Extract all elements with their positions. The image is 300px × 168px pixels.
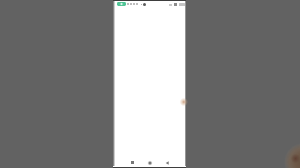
button[interactable]: Content	[113, 7, 186, 156]
button[interactable]: Home	[147, 160, 153, 166]
button[interactable]: Back	[165, 161, 169, 165]
